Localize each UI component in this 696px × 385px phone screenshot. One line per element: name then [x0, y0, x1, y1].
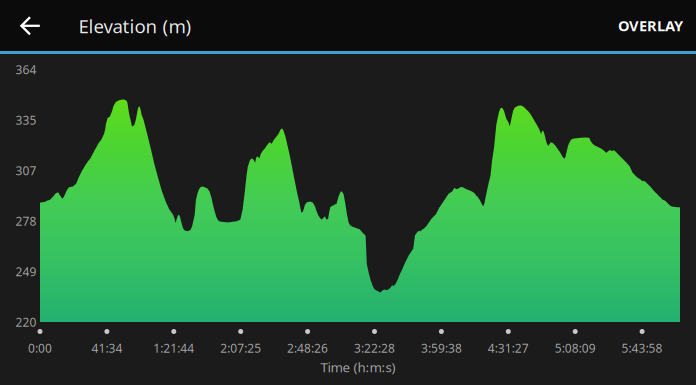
staticText: 5:43:58 [622, 340, 663, 356]
staticText: 220 [15, 314, 36, 330]
staticText: OVERLAY [618, 16, 683, 35]
staticText: Time (h:m:s) [320, 358, 395, 376]
staticText: 335 [15, 112, 36, 128]
staticText: 41:34 [91, 340, 122, 356]
staticText: 1:21:44 [153, 340, 194, 356]
staticText: 249 [15, 263, 36, 279]
staticText: 364 [15, 62, 36, 78]
staticText: 2:07:25 [220, 340, 261, 356]
staticText: 0:00 [28, 340, 52, 356]
staticText: 3:22:28 [354, 340, 395, 356]
button[interactable]: Back [0, 0, 696, 385]
staticText: 278 [15, 213, 36, 229]
staticText: 307 [15, 163, 36, 178]
staticText: 2:48:26 [287, 340, 328, 356]
button[interactable]: OVERLAY [605, 0, 696, 51]
staticText: 3:59:38 [421, 340, 462, 356]
staticText: Elevation (m) [78, 14, 191, 38]
staticText: 4:31:27 [488, 340, 529, 356]
staticText: 5:08:09 [555, 340, 596, 356]
